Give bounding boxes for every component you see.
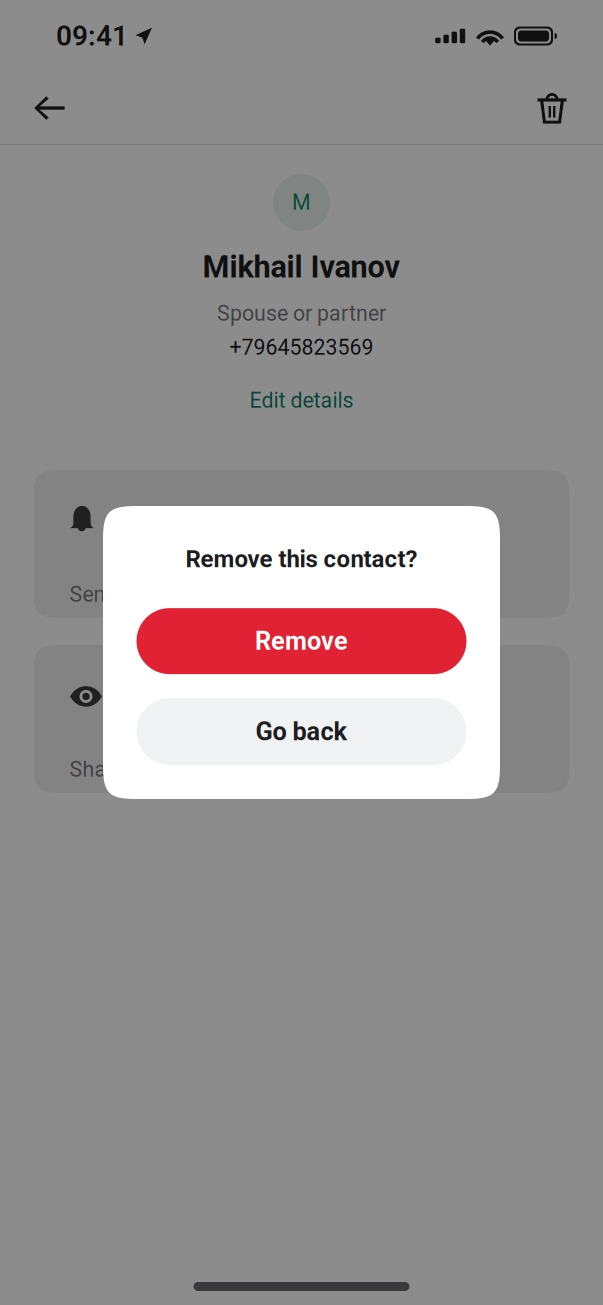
staticText: Send this contact your location — [69, 582, 361, 607]
staticText: Remove this contact? — [185, 545, 417, 573]
staticText: M — [292, 190, 311, 215]
button[interactable]: Send a safety alert — [33, 470, 569, 618]
staticText: +79645823569 — [229, 335, 373, 360]
button[interactable]: Remove — [136, 608, 466, 674]
staticText: 09:41 — [56, 20, 128, 52]
button[interactable]: Share your location — [33, 645, 569, 793]
staticText: Mikhail Ivanov — [202, 249, 400, 285]
staticText: Send a safety alert — [111, 504, 303, 530]
staticText: Remove — [255, 626, 348, 656]
button[interactable]: Go back — [136, 698, 466, 765]
button[interactable]: Delete contact — [537, 77, 567, 139]
button[interactable]: Edit details — [231, 378, 371, 423]
staticText: Share your location — [119, 679, 318, 705]
staticText: Go back — [255, 717, 347, 746]
button[interactable]: Back — [34, 77, 65, 139]
staticText: Edit details — [249, 388, 353, 413]
staticText: Share your live location — [69, 757, 287, 782]
staticText: Spouse or partner — [217, 301, 386, 326]
